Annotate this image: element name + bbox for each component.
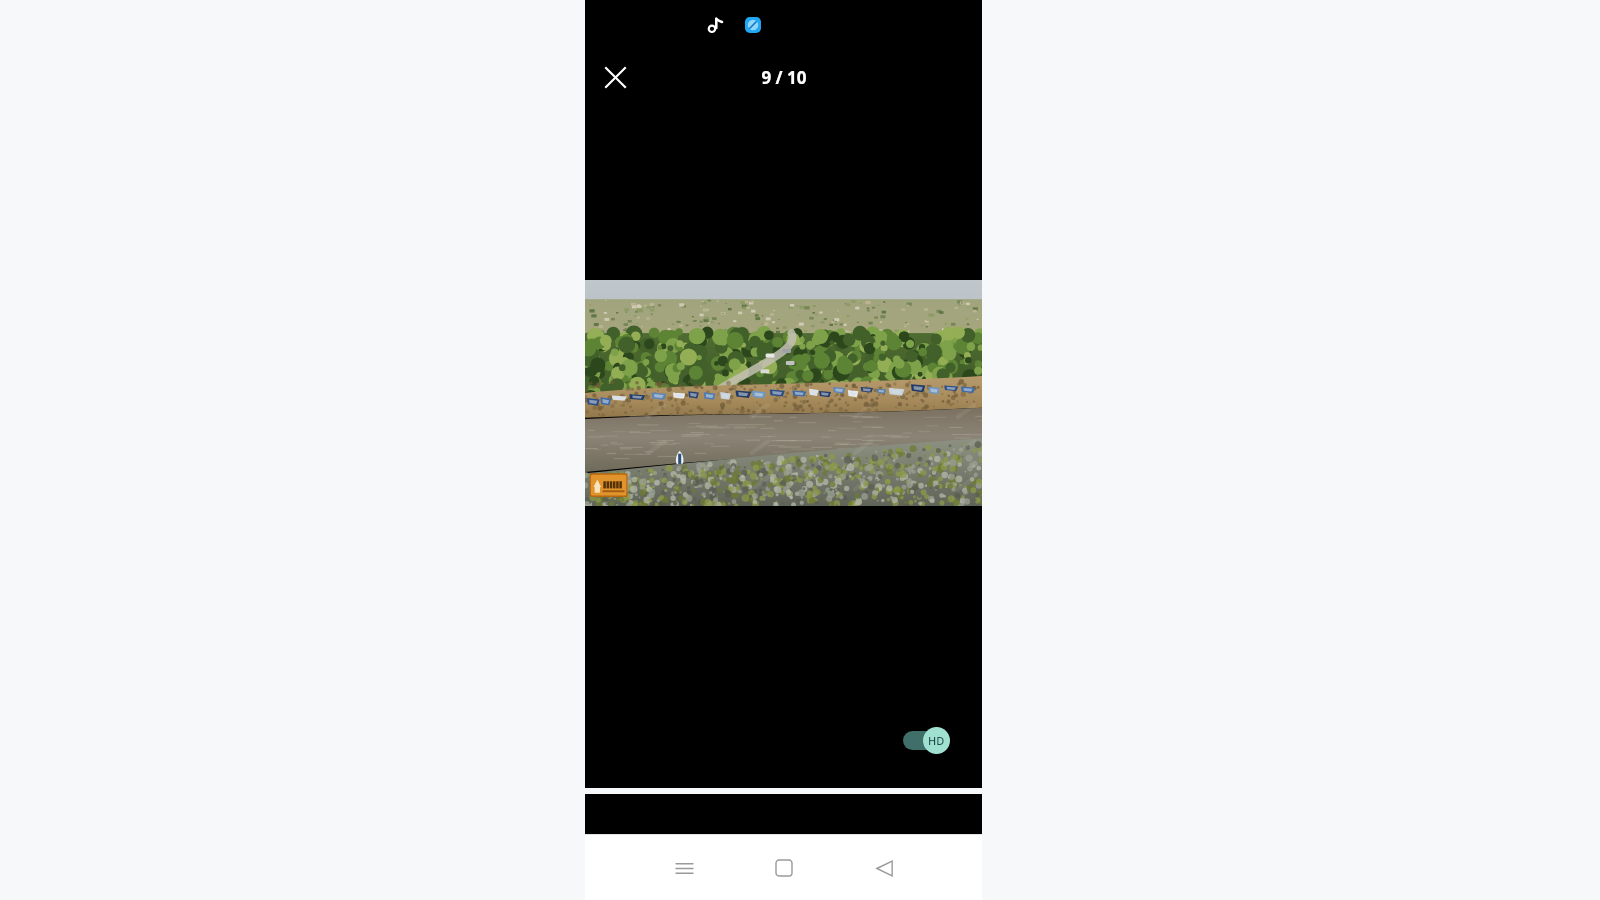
button[interactable]: Recent apps bbox=[634, 842, 734, 894]
staticText: 9 / 10 bbox=[761, 66, 807, 89]
button[interactable]: Home bbox=[734, 842, 834, 894]
staticText: HD bbox=[928, 733, 945, 748]
button[interactable]: HD quality bbox=[903, 727, 950, 754]
button[interactable]: Back bbox=[834, 842, 934, 894]
button[interactable] bbox=[585, 280, 982, 506]
button[interactable]: Close bbox=[595, 57, 635, 97]
button[interactable]: TikTok bbox=[703, 14, 725, 36]
button[interactable]: Share bbox=[742, 14, 764, 36]
